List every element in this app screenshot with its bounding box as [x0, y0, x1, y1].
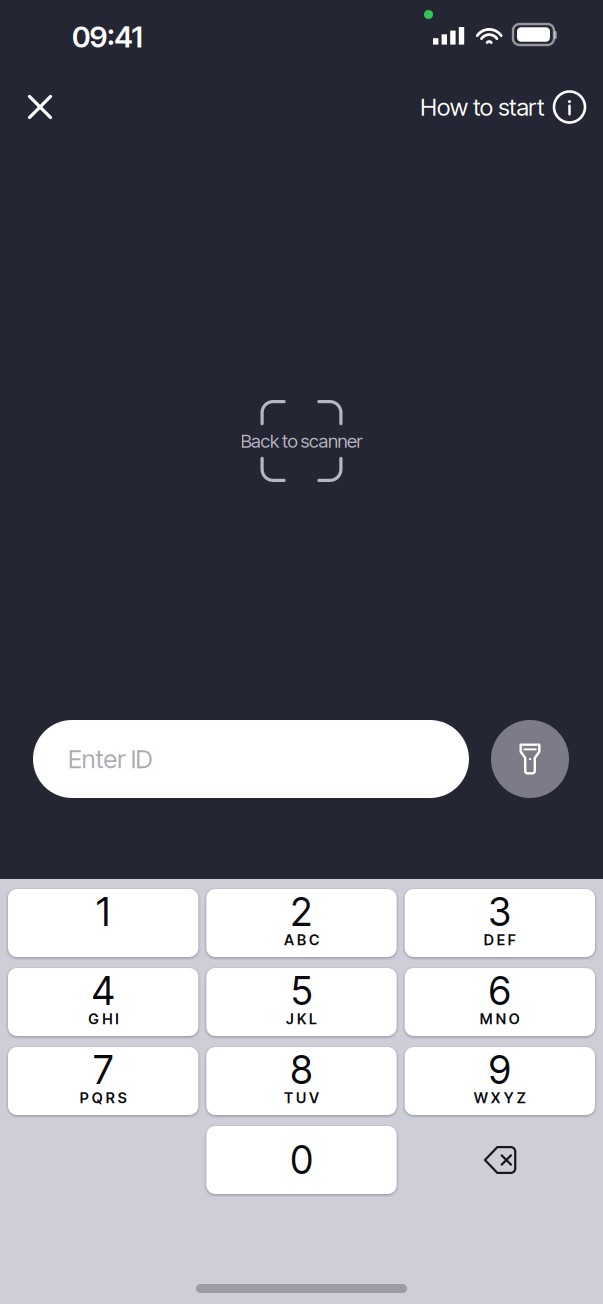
button[interactable]: 7	[8, 1047, 198, 1115]
staticText: G H I	[88, 1010, 118, 1028]
button[interactable]: Flashlight	[491, 720, 569, 798]
staticText: 1	[96, 889, 110, 935]
button[interactable]: 2	[206, 889, 397, 957]
button[interactable]: 6	[405, 968, 595, 1036]
button[interactable]: 4	[8, 968, 198, 1036]
staticText: W X Y Z	[474, 1089, 526, 1107]
staticText: T U V	[284, 1089, 319, 1107]
staticText: 4	[92, 968, 115, 1014]
button[interactable]: Enter ID	[33, 720, 469, 798]
button[interactable]: 3	[405, 889, 595, 957]
staticText: 3	[488, 889, 511, 935]
button[interactable]: 1	[8, 889, 198, 957]
staticText: P Q R S	[80, 1089, 127, 1107]
button[interactable]: Close	[8, 79, 72, 135]
staticText: 8	[290, 1047, 312, 1093]
staticText: M N O	[480, 1010, 520, 1028]
staticText: 09:41	[72, 19, 143, 54]
staticText: 6	[489, 968, 511, 1014]
staticText: 9	[489, 1047, 511, 1093]
staticText: 0	[290, 1137, 312, 1183]
staticText: How to start	[420, 92, 545, 121]
button[interactable]: 9	[405, 1047, 595, 1115]
staticText: A B C	[284, 931, 319, 949]
staticText: 7	[93, 1047, 113, 1093]
staticText: J K L	[286, 1010, 317, 1028]
staticText: Back to scanner	[240, 430, 362, 452]
button[interactable]: How to start	[420, 79, 603, 135]
button[interactable]: 5	[206, 968, 397, 1036]
button[interactable]: 0	[206, 1126, 397, 1194]
staticText: 5	[291, 968, 312, 1014]
staticText: 2	[290, 889, 312, 935]
staticText: D E F	[484, 931, 516, 949]
button[interactable]: Delete	[405, 1126, 595, 1194]
button[interactable]: Back to scanner	[240, 430, 362, 452]
button[interactable]: 8	[206, 1047, 397, 1115]
staticText: Enter ID	[68, 744, 153, 774]
